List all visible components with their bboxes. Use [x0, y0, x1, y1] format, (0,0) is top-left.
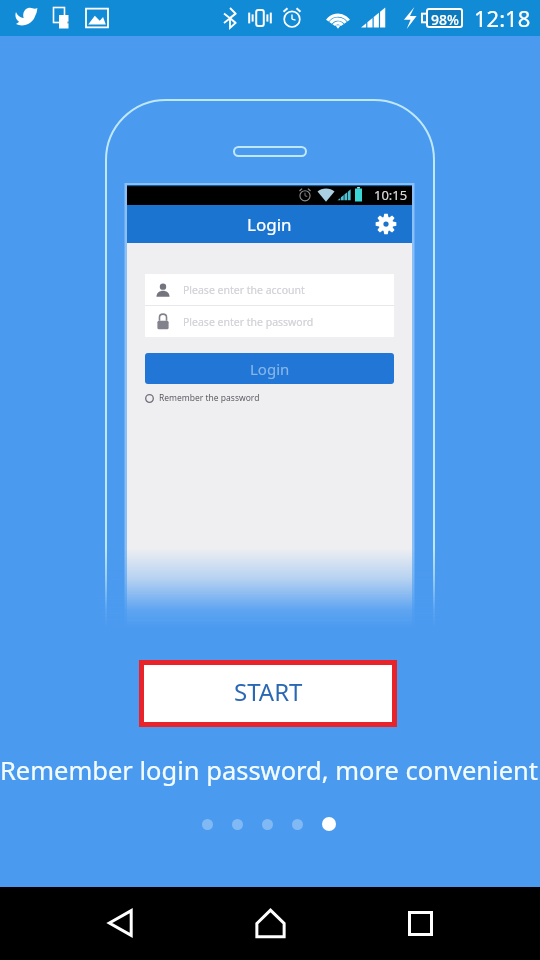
staticText: Please enter the password	[183, 315, 314, 329]
button[interactable]: Settings	[373, 211, 399, 237]
button[interactable]: Home	[240, 897, 300, 949]
button[interactable]: Please enter the account	[145, 274, 394, 305]
button[interactable]: Please enter the password	[145, 306, 394, 337]
button[interactable]: Go to page 4	[292, 819, 303, 830]
staticText: 98%	[431, 10, 459, 29]
button[interactable]: Go to page 2	[232, 819, 243, 830]
staticText: Remember the password	[159, 392, 260, 404]
button[interactable]: START	[139, 660, 397, 727]
button[interactable]: Page 5, current page	[322, 817, 336, 831]
staticText: 10:15	[374, 186, 408, 204]
button[interactable]: Back	[90, 897, 150, 949]
staticText: Login	[247, 213, 292, 236]
staticText: Remember login password, more convenient	[0, 753, 539, 788]
staticText: 12:18	[474, 3, 531, 33]
staticText: Please enter the account	[183, 283, 305, 297]
button[interactable]: Remember the password	[145, 392, 260, 404]
button[interactable]: Go to page 1	[202, 819, 213, 830]
button[interactable]: Login	[145, 353, 394, 384]
staticText: START	[234, 675, 303, 708]
button[interactable]: Recent apps	[390, 897, 450, 949]
staticText: Login	[250, 359, 290, 379]
button[interactable]: Go to page 3	[262, 819, 273, 830]
